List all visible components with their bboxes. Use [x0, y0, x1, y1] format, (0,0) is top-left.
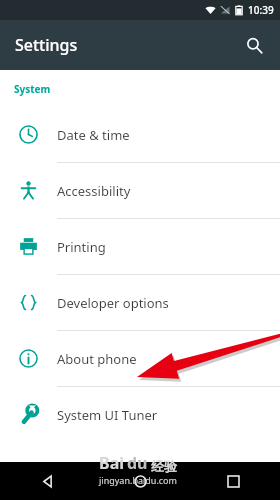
button[interactable]: Developer options [0, 275, 280, 330]
staticText: 10:39 [248, 3, 274, 17]
staticText: jingyan.baidu.com [0, 474, 276, 486]
staticText: System [14, 82, 51, 96]
button[interactable]: Recent apps [187, 462, 280, 500]
button[interactable]: Back [0, 462, 94, 500]
button[interactable]: Search [234, 25, 274, 65]
staticText: Date & time [57, 126, 130, 144]
staticText: du [127, 452, 148, 474]
staticText: 经验 [151, 458, 177, 474]
button[interactable]: Home [94, 462, 187, 500]
staticText: System UI Tuner [57, 406, 158, 424]
staticText: Printing [57, 238, 106, 256]
staticText: About phone [57, 350, 137, 368]
staticText: Settings [15, 34, 78, 56]
button[interactable]: About phone [0, 331, 280, 386]
button[interactable]: System UI Tuner [0, 387, 280, 442]
button[interactable]: Accessibility [0, 163, 280, 218]
button[interactable]: Printing [0, 219, 280, 274]
staticText: Bai [99, 452, 125, 474]
staticText: Accessibility [57, 182, 131, 200]
staticText: Developer options [57, 294, 169, 312]
button[interactable]: Date & time [0, 107, 280, 162]
